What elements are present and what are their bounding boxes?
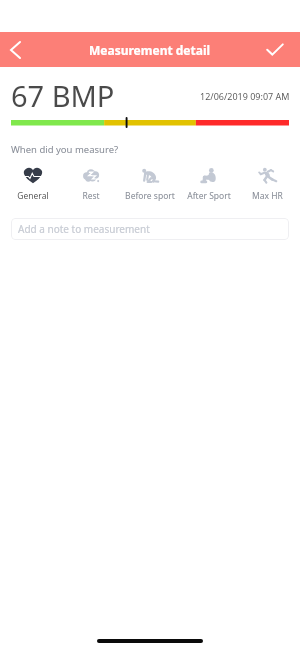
staticText: Max HR [252,190,283,202]
button[interactable]: Back [0,32,30,67]
button[interactable]: Confirm [258,32,292,67]
button[interactable]: After Sport [179,166,238,202]
button[interactable]: Max HR [238,166,297,202]
staticText: Rest [82,190,100,202]
staticText: General [17,190,49,202]
staticText: 67 BMP [11,76,115,115]
staticText: Measurement detail [89,42,211,58]
staticText: When did you measure? [11,143,119,156]
staticText: After Sport [187,190,231,202]
staticText: 12/06/2019 09:07 AM [200,90,290,102]
button[interactable]: General [4,166,62,202]
staticText: Add a note to measurement [18,222,150,236]
button[interactable]: Add a note to measurement [11,218,289,240]
staticText: Before sport [125,190,175,202]
button[interactable]: Rest [62,166,120,202]
button[interactable]: Before sport [120,166,179,202]
